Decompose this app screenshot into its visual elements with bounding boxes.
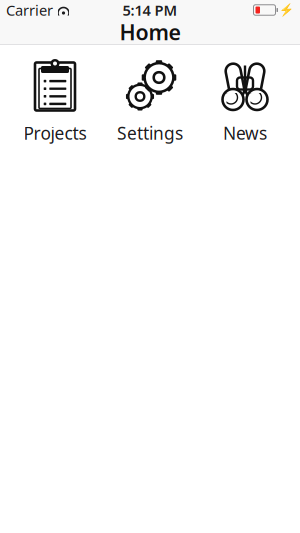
staticText: 5:14 PM bbox=[122, 0, 177, 20]
staticText: Settings bbox=[117, 121, 183, 144]
staticText: ⚡ bbox=[279, 3, 294, 17]
button[interactable]: Settings bbox=[102, 58, 197, 146]
button[interactable]: News bbox=[197, 58, 292, 146]
button[interactable]: Projects bbox=[7, 58, 102, 146]
staticText: Carrier bbox=[6, 0, 53, 20]
staticText: News bbox=[223, 121, 267, 144]
staticText: Home bbox=[119, 18, 180, 46]
staticText: Projects bbox=[23, 121, 86, 144]
